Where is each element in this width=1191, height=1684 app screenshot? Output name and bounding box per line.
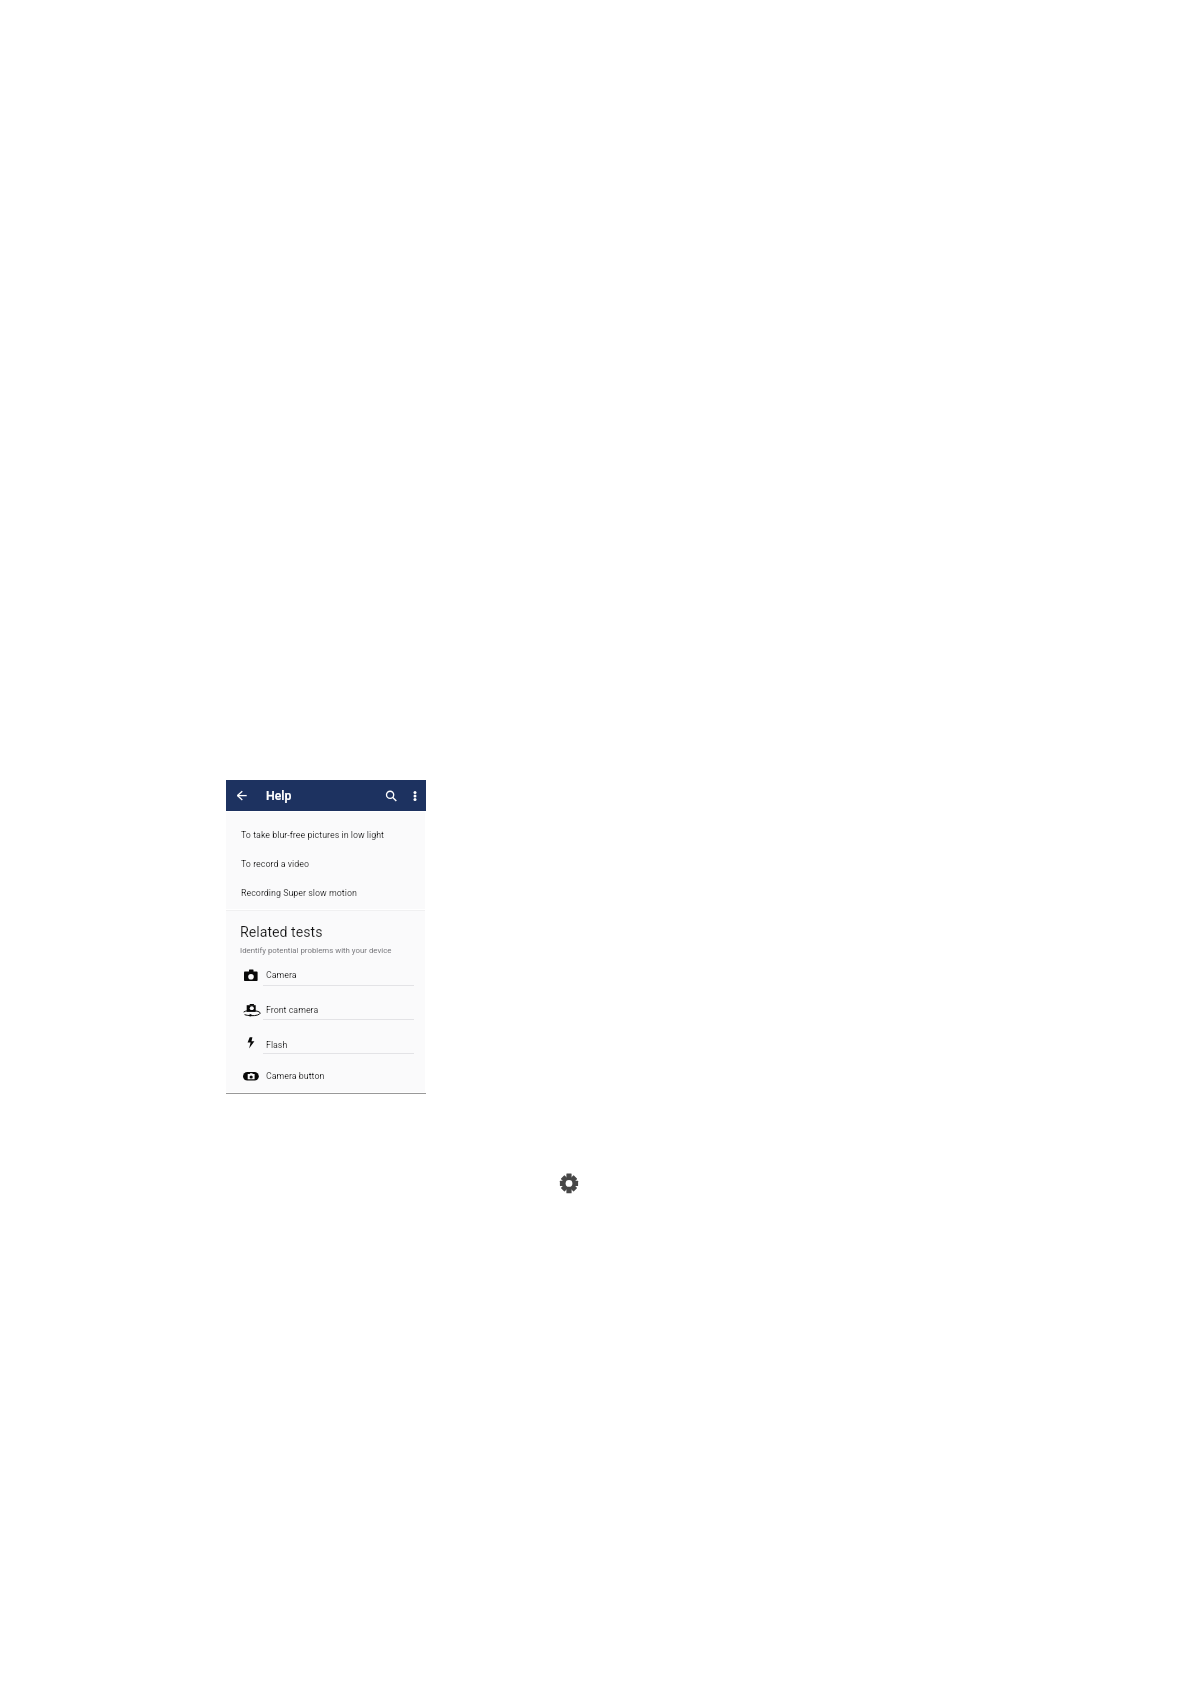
button[interactable]: Navigate up xyxy=(236,789,248,801)
button[interactable]: Camera xyxy=(226,962,425,986)
button[interactable]: Search xyxy=(384,789,397,802)
staticText: To take blur-free pictures in low light xyxy=(241,830,384,840)
button[interactable]: Flash xyxy=(226,1032,425,1056)
button[interactable]: Settings xyxy=(559,1173,579,1193)
staticText: Flash xyxy=(266,1040,288,1050)
button[interactable]: More options xyxy=(409,790,421,802)
button[interactable]: Front camera xyxy=(226,997,425,1021)
staticText: To record a video xyxy=(241,859,309,869)
staticText: Camera xyxy=(266,970,297,980)
staticText: Recording Super slow motion xyxy=(241,888,357,898)
staticText: Identify potential problems with your de… xyxy=(240,946,392,955)
staticText: Help xyxy=(266,789,292,803)
staticText: Camera button xyxy=(266,1071,325,1081)
button[interactable]: Recording Super slow motion xyxy=(226,881,425,904)
staticText: Related tests xyxy=(240,924,323,941)
button[interactable]: To take blur-free pictures in low light xyxy=(226,823,425,846)
staticText: Front camera xyxy=(266,1005,319,1015)
button[interactable]: Camera button xyxy=(226,1063,425,1087)
button[interactable]: To record a video xyxy=(226,852,425,875)
